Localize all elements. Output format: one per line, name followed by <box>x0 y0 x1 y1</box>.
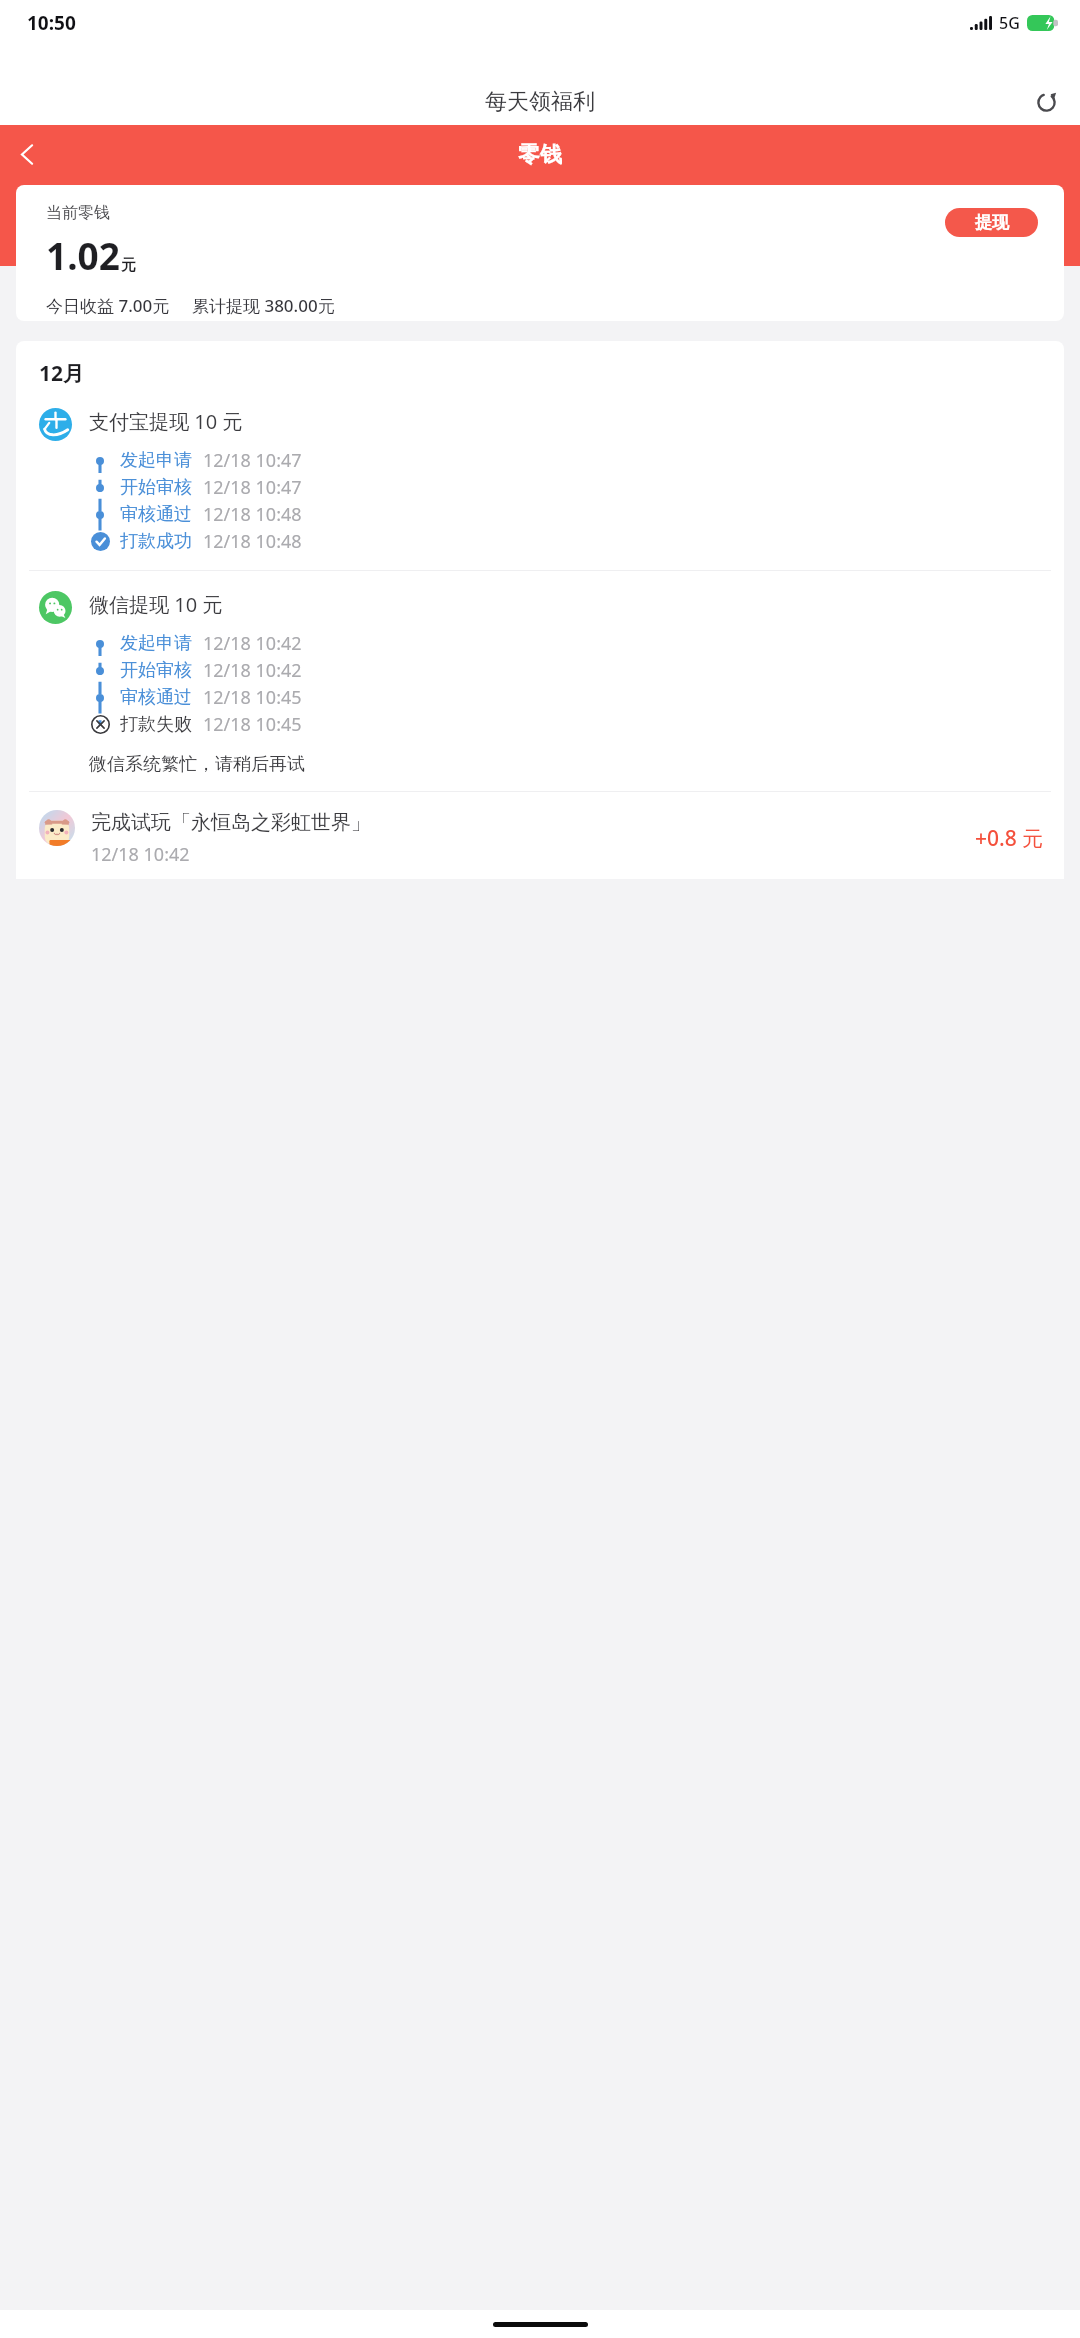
staticText: 微信提现 10 元 <box>89 591 223 618</box>
button[interactable]: 提现 <box>945 208 1038 237</box>
staticText: 12/18 10:42 <box>203 631 302 656</box>
staticText: 元 <box>121 256 136 275</box>
staticText: 零钱 <box>518 141 562 169</box>
staticText: 打款成功 <box>120 530 192 553</box>
staticText: 12/18 10:48 <box>203 502 302 527</box>
button[interactable]: 完成试玩「永恒岛之彩虹世界」 <box>16 792 1064 879</box>
staticText: 打款失败 <box>120 713 192 736</box>
staticText: +0.8 元 <box>975 824 1044 853</box>
staticText: 12月 <box>39 359 85 388</box>
staticText: 提现 <box>975 212 1009 233</box>
staticText: 发起申请 <box>120 449 192 472</box>
staticText: 5G <box>999 12 1020 34</box>
staticText: 12/18 10:47 <box>203 448 302 473</box>
staticText: 每天领福利 <box>485 88 595 116</box>
staticText: 审核通过 <box>120 503 192 526</box>
staticText: 开始审核 <box>120 476 192 499</box>
staticText: 审核通过 <box>120 686 192 709</box>
staticText: 累计提现 380.00元 <box>192 294 335 317</box>
button[interactable]: Refresh <box>1027 83 1065 121</box>
staticText: 12/18 10:42 <box>91 842 190 867</box>
staticText: 今日收益 7.00元 <box>46 294 170 317</box>
staticText: 微信系统繁忙，请稍后再试 <box>89 753 305 776</box>
staticText: 12/18 10:45 <box>203 685 302 710</box>
button[interactable]: Back <box>3 130 51 178</box>
staticText: 12/18 10:47 <box>203 475 302 500</box>
staticText: 10:50 <box>27 10 76 36</box>
staticText: 完成试玩「永恒岛之彩虹世界」 <box>91 810 371 835</box>
staticText: 12/18 10:45 <box>203 712 302 737</box>
staticText: 1.02 <box>46 230 120 280</box>
staticText: 发起申请 <box>120 632 192 655</box>
button[interactable]: 微信提现 10 元 <box>16 571 1064 791</box>
button[interactable]: 支付宝提现 10 元 <box>16 388 1064 570</box>
staticText: 当前零钱 <box>46 203 110 223</box>
staticText: 12/18 10:48 <box>203 529 302 554</box>
staticText: 支付宝提现 10 元 <box>89 408 243 435</box>
staticText: 12/18 10:42 <box>203 658 302 683</box>
staticText: 开始审核 <box>120 659 192 682</box>
